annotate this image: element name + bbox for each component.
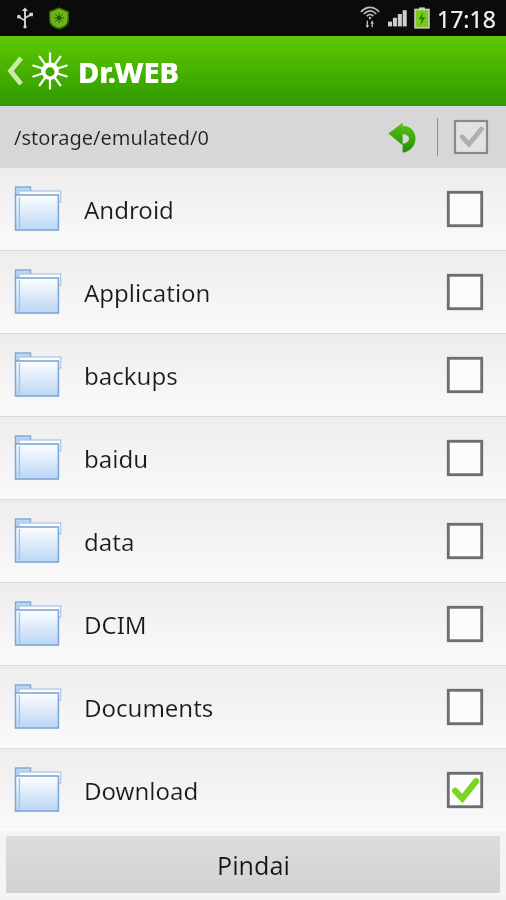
button[interactable]: Up one level	[381, 114, 427, 160]
button[interactable]: data	[0, 500, 506, 582]
staticText: Application	[84, 276, 440, 309]
staticText: backups	[84, 359, 440, 392]
button[interactable]: baidu	[0, 417, 506, 499]
button[interactable]: Select data	[440, 516, 490, 566]
staticText: Pindai	[217, 848, 290, 882]
button[interactable]: Android	[0, 168, 506, 250]
staticText: /storage/emulated/0	[14, 124, 209, 151]
staticText: DCIM	[84, 608, 440, 641]
button[interactable]: Documents	[0, 666, 506, 748]
button[interactable]: Pindai	[6, 836, 500, 893]
button[interactable]: Dr.WEB back	[0, 36, 506, 106]
staticText: Android	[84, 193, 440, 226]
staticText: Documents	[84, 691, 440, 724]
staticText: baidu	[84, 442, 440, 475]
button[interactable]: Select DCIM	[440, 599, 490, 649]
button[interactable]: Application	[0, 251, 506, 333]
staticText: Download	[84, 774, 440, 807]
button[interactable]: Selected Download	[440, 765, 490, 815]
button[interactable]: Download	[0, 749, 506, 831]
staticText: Dr.WEB	[78, 52, 179, 91]
button[interactable]: Select Application	[440, 267, 490, 317]
button[interactable]: Select all	[448, 114, 494, 160]
staticText: data	[84, 525, 440, 558]
button[interactable]: Select baidu	[440, 433, 490, 483]
button[interactable]: Select Documents	[440, 682, 490, 732]
button[interactable]: Select backups	[440, 350, 490, 400]
button[interactable]: DCIM	[0, 583, 506, 665]
button[interactable]: backups	[0, 334, 506, 416]
staticText: 17:18	[437, 3, 496, 34]
button[interactable]: Select Android	[440, 184, 490, 234]
